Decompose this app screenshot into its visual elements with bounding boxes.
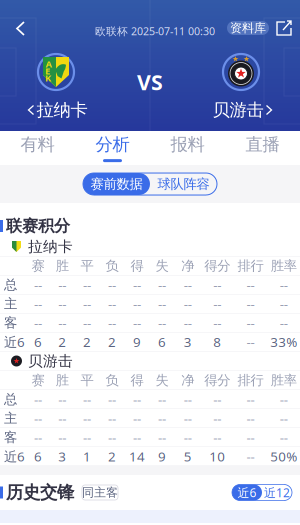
- staticText: 6: [158, 333, 166, 351]
- staticText: 欧联杯 2025-07-11 00:30: [95, 24, 215, 38]
- button[interactable]: 分析: [75, 131, 150, 165]
- staticText: --: [133, 276, 141, 294]
- staticText: --: [184, 276, 192, 294]
- staticText: 9: [133, 333, 141, 351]
- staticText: 排行: [237, 258, 263, 274]
- staticText: 贝游击: [28, 352, 73, 370]
- staticText: 5: [184, 447, 192, 465]
- staticText: --: [34, 276, 42, 294]
- staticText: --: [246, 314, 254, 332]
- button[interactable]: 拉纳卡: [13, 100, 103, 120]
- staticText: --: [184, 295, 192, 313]
- staticText: 平: [80, 372, 93, 388]
- staticText: --: [83, 390, 91, 408]
- staticText: 近6: [237, 484, 256, 500]
- staticText: --: [58, 295, 66, 313]
- staticText: --: [108, 428, 116, 446]
- staticText: --: [213, 428, 221, 446]
- button[interactable]: 报料: [150, 131, 225, 165]
- staticText: --: [58, 390, 66, 408]
- staticText: --: [34, 295, 42, 313]
- staticText: --: [184, 409, 192, 427]
- staticText: --: [34, 428, 42, 446]
- staticText: --: [158, 295, 166, 313]
- staticText: 总: [4, 391, 17, 407]
- button[interactable]: 近6: [232, 484, 262, 500]
- staticText: --: [108, 409, 116, 427]
- staticText: --: [58, 314, 66, 332]
- staticText: 平: [80, 258, 93, 274]
- staticText: --: [158, 276, 166, 294]
- staticText: --: [133, 409, 141, 427]
- staticText: --: [280, 295, 288, 313]
- staticText: K: [45, 72, 51, 84]
- staticText: E: [45, 65, 50, 77]
- staticText: 负: [105, 372, 118, 388]
- staticText: --: [280, 409, 288, 427]
- button[interactable]: 赛前数据: [83, 173, 150, 195]
- staticText: 赛前数据: [90, 176, 142, 192]
- staticText: 3: [58, 447, 66, 465]
- staticText: 客: [4, 315, 17, 331]
- staticText: 直播: [245, 134, 279, 155]
- staticText: 胜率: [271, 372, 297, 388]
- staticText: --: [246, 333, 254, 351]
- staticText: 6: [34, 333, 42, 351]
- staticText: --: [58, 428, 66, 446]
- staticText: 14: [129, 447, 145, 465]
- staticText: --: [158, 390, 166, 408]
- staticText: 净: [181, 372, 194, 388]
- staticText: --: [133, 390, 141, 408]
- staticText: 6: [34, 447, 42, 465]
- staticText: --: [158, 314, 166, 332]
- staticText: --: [34, 409, 42, 427]
- staticText: 失: [155, 372, 168, 388]
- staticText: --: [246, 428, 254, 446]
- staticText: 有料: [20, 134, 54, 155]
- staticText: 2: [108, 447, 116, 465]
- staticText: 同主客: [82, 485, 118, 500]
- staticText: --: [213, 390, 221, 408]
- staticText: 得: [130, 258, 143, 274]
- staticText: 分析: [95, 134, 129, 155]
- staticText: 2: [58, 333, 66, 351]
- staticText: 联赛积分: [6, 216, 70, 236]
- button[interactable]: 有料: [0, 131, 75, 165]
- staticText: 胜: [56, 258, 69, 274]
- staticText: --: [158, 409, 166, 427]
- staticText: --: [108, 295, 116, 313]
- button[interactable]: 近12: [262, 484, 292, 500]
- staticText: --: [246, 295, 254, 313]
- button[interactable]: 同主客: [74, 485, 118, 500]
- staticText: 2: [108, 333, 116, 351]
- staticText: 2: [83, 333, 91, 351]
- staticText: 10: [209, 447, 225, 465]
- staticText: 3: [184, 333, 192, 351]
- staticText: 资料库: [230, 21, 266, 35]
- staticText: 失: [155, 258, 168, 274]
- staticText: --: [108, 390, 116, 408]
- staticText: 客: [4, 429, 17, 445]
- staticText: 球队阵容: [157, 176, 209, 192]
- staticText: --: [83, 295, 91, 313]
- staticText: --: [34, 314, 42, 332]
- staticText: 近6: [4, 333, 25, 351]
- button[interactable]: 贝游击: [197, 100, 287, 120]
- staticText: --: [246, 390, 254, 408]
- staticText: --: [213, 295, 221, 313]
- button[interactable]: 直播: [225, 131, 300, 165]
- staticText: --: [280, 428, 288, 446]
- staticText: --: [213, 276, 221, 294]
- staticText: 得: [130, 372, 143, 388]
- staticText: --: [280, 276, 288, 294]
- staticText: 赛: [31, 372, 44, 388]
- staticText: 贝游击: [212, 99, 263, 121]
- button[interactable]: 球队阵容: [150, 173, 217, 195]
- button[interactable]: Share: [274, 18, 294, 38]
- staticText: 近12: [264, 484, 290, 500]
- staticText: 50%: [270, 447, 297, 465]
- staticText: 拉纳卡: [28, 237, 73, 255]
- button[interactable]: 资料库: [227, 21, 269, 35]
- button[interactable]: Back: [5, 13, 35, 43]
- staticText: --: [58, 276, 66, 294]
